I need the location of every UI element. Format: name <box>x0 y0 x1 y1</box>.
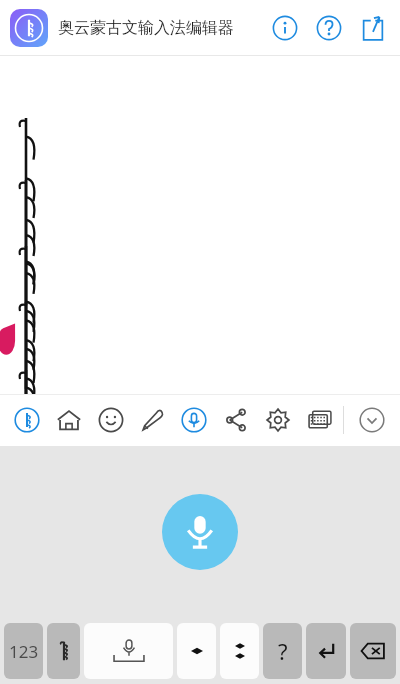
button[interactable]: Share <box>217 401 255 439</box>
button[interactable] <box>10 9 48 47</box>
staticText: 奥云蒙古文输入法编辑器 <box>58 18 234 38</box>
button[interactable]: Dot <box>177 623 216 679</box>
button[interactable]: Handwriting <box>134 401 172 439</box>
button[interactable]: Emoji <box>92 401 130 439</box>
button[interactable]: Backspace <box>350 623 396 679</box>
staticText: 123 <box>9 640 39 663</box>
button[interactable]: Collapse <box>344 394 400 446</box>
button[interactable]: Home <box>50 401 88 439</box>
button[interactable]: Separator <box>220 623 259 679</box>
button[interactable]: Voice input <box>175 401 213 439</box>
button[interactable]: Settings <box>259 401 297 439</box>
button[interactable]: 123 <box>4 623 43 679</box>
button[interactable]: Voice input <box>162 494 238 570</box>
button[interactable]: Share <box>358 13 388 43</box>
staticText: ? <box>278 636 288 666</box>
button[interactable]: Keyboard <box>301 401 339 439</box>
button[interactable]: Space voice <box>84 623 173 679</box>
button[interactable]: Help <box>314 13 344 43</box>
button[interactable]: Question <box>263 623 302 679</box>
button[interactable]: Mongolian input <box>8 401 46 439</box>
button[interactable]: Enter <box>306 623 346 679</box>
button[interactable]: Mongolian <box>47 623 80 679</box>
button[interactable]: Info <box>270 13 300 43</box>
